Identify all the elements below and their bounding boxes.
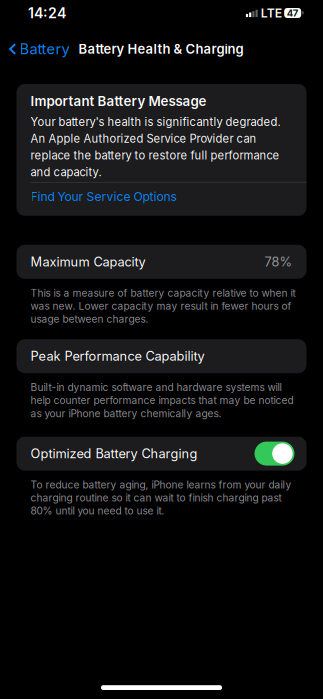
staticText: 47: [287, 7, 299, 19]
button[interactable]: Battery: [0, 36, 74, 62]
staticText: Battery Health & Charging: [78, 41, 243, 57]
staticText: Peak Performance Capability: [30, 348, 204, 364]
staticText: Your battery's health is significantly d…: [30, 115, 280, 179]
staticText: This is a measure of battery capacity re…: [30, 287, 295, 325]
staticText: 78%: [264, 254, 292, 270]
staticText: Maximum Capacity: [30, 254, 145, 270]
staticText: Important Battery Message: [30, 93, 206, 109]
button[interactable]: Optimized Battery Charging: [16, 437, 306, 471]
staticText: Find Your Service Options: [30, 189, 176, 204]
staticText: 14:24: [28, 4, 66, 21]
staticText: Built-in dynamic software and hardware s…: [30, 381, 293, 420]
staticText: Battery: [19, 40, 69, 58]
staticText: LTE: [261, 6, 282, 20]
staticText: Optimized Battery Charging: [30, 446, 197, 461]
staticText: To reduce battery aging, iPhone learns f…: [30, 479, 291, 517]
button[interactable]: Find Your Service Options: [30, 183, 292, 216]
